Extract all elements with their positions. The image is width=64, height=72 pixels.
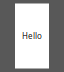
staticText: Hello [22,31,42,41]
